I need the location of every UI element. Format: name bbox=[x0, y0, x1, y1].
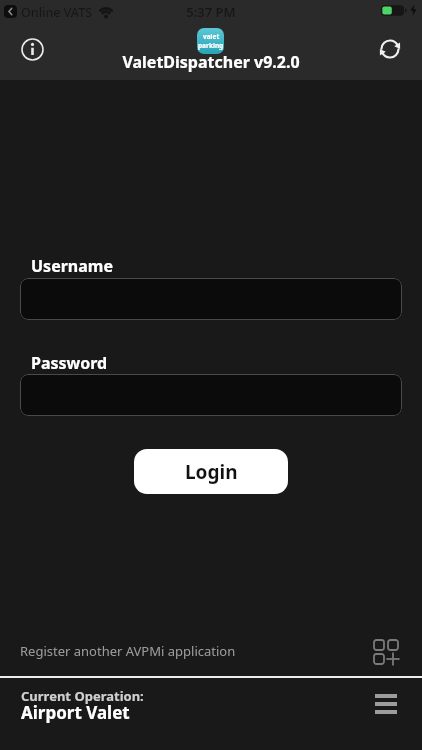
button[interactable]: Register another AVPMi application bbox=[0, 630, 422, 676]
button[interactable] bbox=[376, 35, 404, 63]
staticText: ValetDispatcher v9.2.0 bbox=[0, 51, 422, 73]
staticText: Current Operation: bbox=[21, 687, 144, 705]
staticText: Login bbox=[185, 459, 238, 485]
staticText: 5:37 PM bbox=[0, 3, 422, 21]
staticText: valet bbox=[203, 32, 220, 41]
staticText: parking bbox=[198, 41, 224, 50]
staticText: Username bbox=[31, 255, 113, 277]
button[interactable] bbox=[20, 374, 402, 416]
button[interactable]: Login bbox=[134, 449, 288, 494]
button[interactable] bbox=[20, 278, 402, 320]
staticText: Online VATS bbox=[21, 4, 93, 21]
staticText: Password bbox=[31, 352, 108, 374]
button[interactable] bbox=[369, 686, 403, 720]
staticText: Register another AVPMi application bbox=[20, 642, 236, 660]
button[interactable] bbox=[18, 35, 46, 63]
staticText: Airport Valet bbox=[21, 701, 130, 724]
